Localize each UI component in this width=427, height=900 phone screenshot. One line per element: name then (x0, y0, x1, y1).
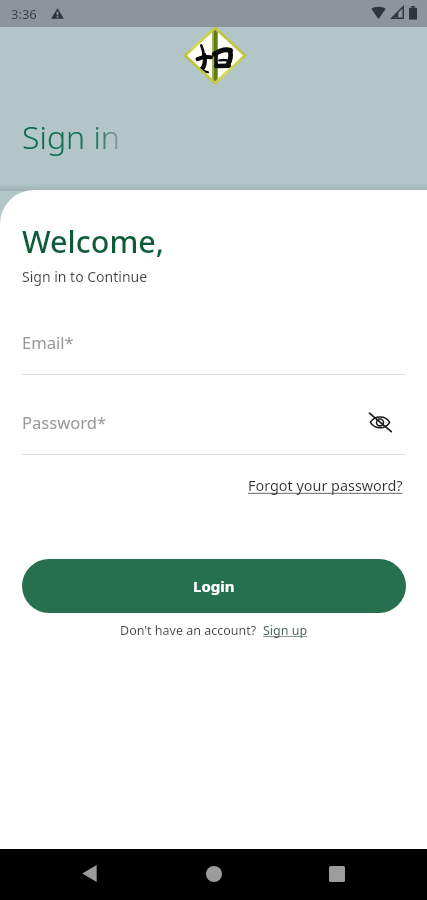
button[interactable]: Back (66, 850, 113, 897)
staticText: Welcome, (22, 220, 165, 262)
button[interactable]: Recent apps (313, 850, 360, 897)
button[interactable]: Login (22, 559, 406, 613)
staticText: Sign in (22, 115, 120, 159)
button[interactable]: Show password (364, 406, 396, 438)
staticText: Sign in to Continue (22, 267, 148, 286)
staticText: Login (193, 576, 235, 596)
staticText: Email* (22, 331, 74, 354)
button[interactable]: Sign up (263, 622, 308, 639)
staticText: Password* (22, 411, 107, 434)
button[interactable]: Forgot your password? (248, 476, 403, 496)
button[interactable]: Home (190, 850, 237, 897)
staticText: 3:36 (11, 5, 37, 23)
staticText: Don't have an account? (120, 622, 257, 639)
